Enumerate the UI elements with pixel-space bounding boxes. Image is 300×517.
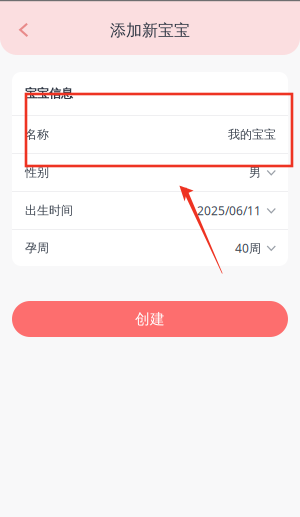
staticText: 名称 — [25, 127, 49, 142]
staticText: 我的宝宝 — [228, 127, 276, 142]
staticText: 创建 — [135, 310, 165, 328]
button[interactable]: 性别 — [12, 154, 288, 191]
staticText: 2025/06/11 — [197, 202, 261, 218]
staticText: 出生时间 — [25, 203, 73, 218]
staticText: 孕周 — [25, 241, 49, 255]
button[interactable]: 名称 — [12, 116, 288, 153]
staticText: 性别 — [25, 165, 49, 180]
button[interactable]: Back — [0, 5, 44, 49]
staticText: 宝宝信息 — [25, 86, 73, 101]
button[interactable]: 创建 — [12, 301, 288, 337]
button[interactable]: 孕周 — [12, 230, 288, 266]
button[interactable]: 出生时间 — [12, 192, 288, 229]
staticText: 男 — [249, 165, 261, 180]
staticText: 添加新宝宝 — [110, 21, 190, 40]
staticText: 40周 — [235, 240, 261, 256]
